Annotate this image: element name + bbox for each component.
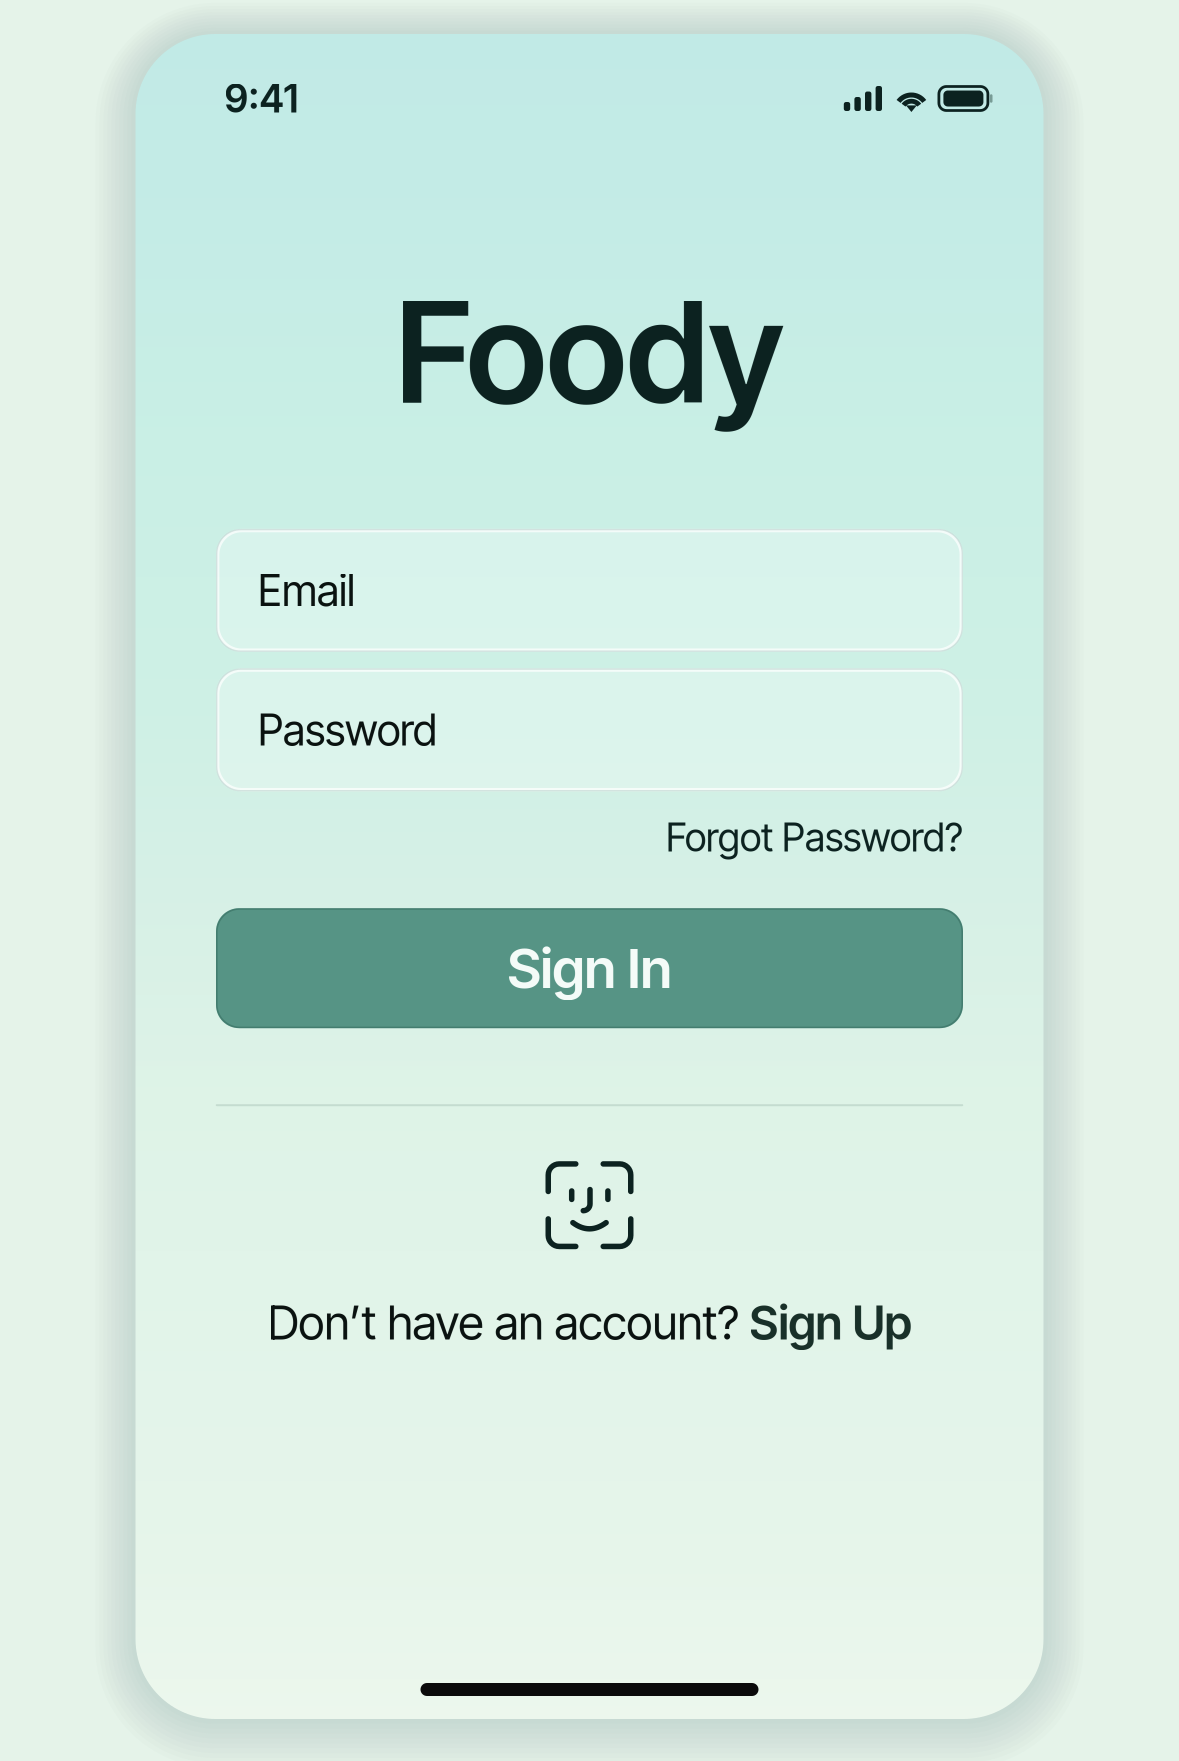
button[interactable]: Password xyxy=(216,668,963,791)
staticText: Forgot Password? xyxy=(666,814,963,861)
button[interactable]: Don’t have an account? xyxy=(267,1294,911,1351)
staticText: Sign Up xyxy=(749,1294,911,1351)
staticText: Foody xyxy=(395,267,783,436)
staticText: 9:41 xyxy=(224,75,298,122)
staticText: Password xyxy=(258,704,437,756)
button[interactable]: Email xyxy=(216,529,963,652)
button[interactable]: Sign In xyxy=(216,908,963,1028)
staticText: Email xyxy=(258,565,355,616)
staticText: Don’t have an account? xyxy=(267,1294,749,1351)
button[interactable]: Sign in with Face ID xyxy=(545,1161,633,1249)
staticText: Sign In xyxy=(507,935,671,1001)
button[interactable]: Forgot Password? xyxy=(666,814,963,861)
